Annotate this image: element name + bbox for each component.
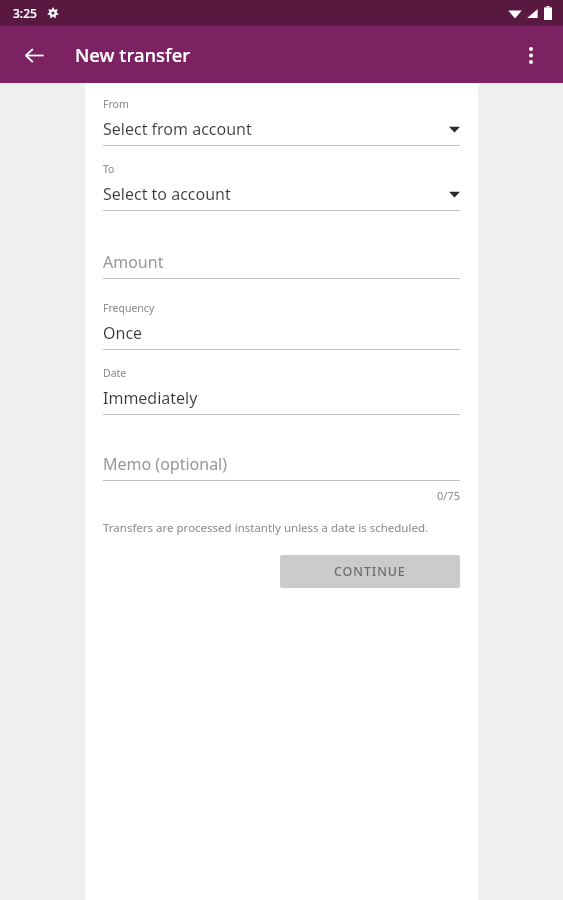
button[interactable]: To xyxy=(103,162,460,211)
staticText: From xyxy=(103,97,129,111)
staticText: Amount xyxy=(103,251,164,273)
staticText: Memo (optional) xyxy=(103,453,228,475)
staticText: To xyxy=(103,162,115,176)
button[interactable]: Frequency xyxy=(103,301,460,350)
button[interactable]: CONTINUE xyxy=(280,555,460,588)
staticText: Select from account xyxy=(103,118,252,140)
staticText: Once xyxy=(103,322,143,344)
staticText: Date xyxy=(103,366,127,380)
staticText: Transfers are processed instantly unless… xyxy=(103,520,429,536)
staticText: New transfer xyxy=(75,42,191,67)
staticText: Select to account xyxy=(103,183,231,205)
staticText: 0/75 xyxy=(437,488,460,503)
button[interactable]: Memo (optional) xyxy=(103,453,460,481)
button[interactable]: From xyxy=(103,97,460,146)
button[interactable]: Amount xyxy=(103,251,460,279)
staticText: Frequency xyxy=(103,301,155,315)
staticText: 3:25 xyxy=(13,5,37,21)
button[interactable]: More options xyxy=(508,32,554,78)
staticText: CONTINUE xyxy=(334,563,406,580)
staticText: Immediately xyxy=(103,387,198,409)
button[interactable]: Date xyxy=(103,366,460,415)
button[interactable]: Navigate up xyxy=(11,32,57,78)
